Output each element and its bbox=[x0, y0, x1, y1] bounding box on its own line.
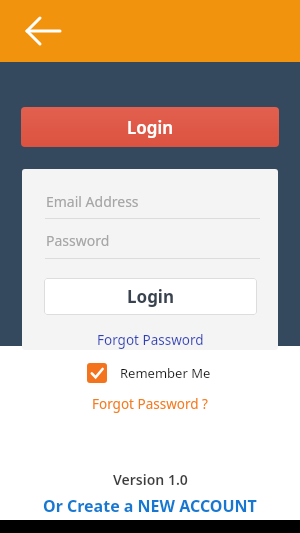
staticText: Login bbox=[127, 285, 175, 308]
button[interactable]: Login bbox=[21, 107, 279, 147]
staticText: Password bbox=[46, 231, 110, 250]
button[interactable]: Forgot Password ? bbox=[92, 395, 208, 413]
staticText: Login bbox=[127, 116, 174, 139]
button[interactable]: Or Create a NEW ACCOUNT bbox=[43, 495, 257, 517]
button[interactable]: Login bbox=[44, 278, 257, 315]
button[interactable]: Remember Me bbox=[87, 363, 211, 383]
button[interactable] bbox=[16, 7, 64, 55]
staticText: Email Address bbox=[46, 192, 139, 211]
staticText: Remember Me bbox=[120, 364, 211, 382]
button[interactable]: Forgot Password bbox=[97, 331, 204, 349]
staticText: Version 1.0 bbox=[113, 470, 188, 489]
